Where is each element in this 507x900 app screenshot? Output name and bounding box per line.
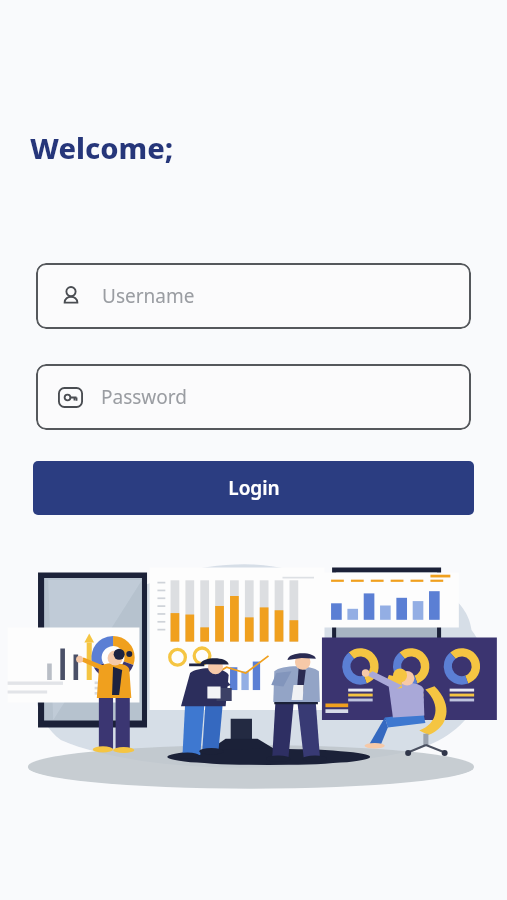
button[interactable]: Password	[36, 364, 471, 430]
staticText: Login	[228, 475, 280, 501]
other: Username	[60, 285, 82, 307]
button[interactable]: Username	[36, 263, 471, 329]
staticText: Password	[101, 384, 187, 410]
staticText: Welcome;	[30, 128, 174, 167]
other: Password	[58, 385, 83, 410]
staticText: Username	[102, 283, 195, 309]
button[interactable]: Login	[33, 461, 474, 515]
